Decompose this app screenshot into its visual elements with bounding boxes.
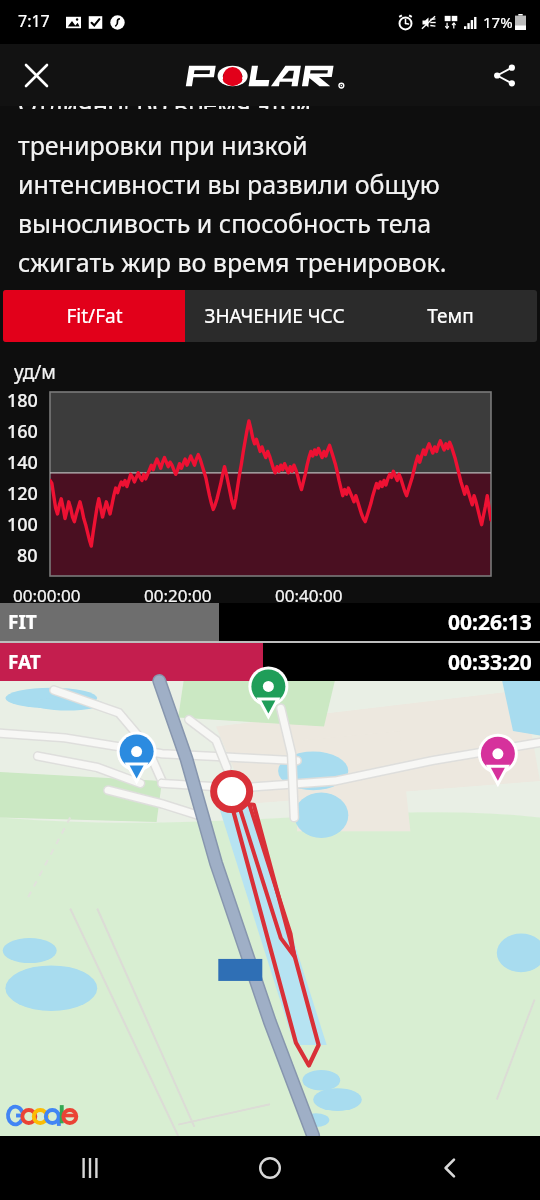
button[interactable]: FIT: [0, 603, 540, 641]
staticText: FIT: [8, 609, 37, 635]
staticText: 7:17: [18, 10, 50, 32]
staticText: 120: [7, 481, 38, 506]
button[interactable]: ЗНАЧЕНИЕ ЧСС: [185, 290, 363, 342]
button[interactable]: Темп: [363, 290, 537, 342]
staticText: 00:26:13: [448, 608, 532, 637]
staticText: 00:00:00: [13, 584, 81, 607]
staticText: Темп: [427, 303, 474, 329]
staticText: 100: [7, 512, 38, 537]
staticText: 00:33:20: [448, 648, 532, 677]
staticText: 160: [7, 419, 38, 444]
staticText: FAT: [8, 649, 41, 675]
button[interactable]: Close: [12, 51, 60, 99]
button[interactable]: Share: [480, 51, 528, 99]
staticText: Отлично! Во время этой: [18, 106, 311, 109]
button[interactable]: Route map: [0, 681, 540, 1136]
staticText: 17%: [483, 12, 513, 32]
staticText: 140: [7, 450, 38, 475]
staticText: 80: [17, 543, 38, 568]
button[interactable]: Home: [180, 1136, 360, 1200]
button[interactable]: Back: [360, 1136, 540, 1200]
staticText: 00:40:00: [275, 584, 343, 607]
button[interactable]: FAT: [0, 643, 540, 681]
staticText: 180: [7, 388, 38, 413]
staticText: Fit/Fat: [66, 303, 123, 329]
staticText: тренировки при низкой интенсивности вы р…: [18, 128, 447, 279]
staticText: 00:20:00: [144, 584, 212, 607]
button[interactable]: Fit/Fat: [3, 290, 185, 342]
staticText: уд/м: [14, 359, 56, 385]
staticText: ЗНАЧЕНИЕ ЧСС: [204, 303, 345, 329]
button[interactable]: Recents: [0, 1136, 180, 1200]
